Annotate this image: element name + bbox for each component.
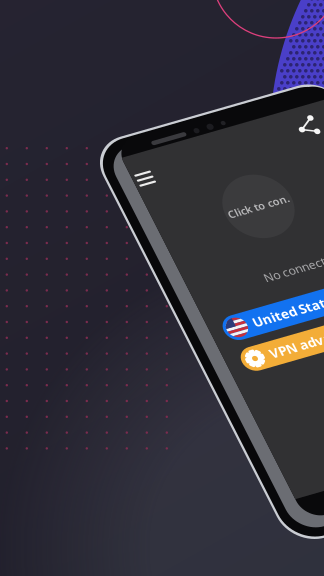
button[interactable]: Share: [281, 172, 315, 204]
button[interactable]: Menu: [108, 178, 142, 210]
button[interactable]: Click to con.: [181, 219, 249, 287]
staticText: United States • Free: [156, 357, 292, 374]
button[interactable]: VPN advanced: [128, 388, 306, 414]
staticText: VPN advanced: [157, 392, 252, 410]
staticText: No connected: [187, 317, 264, 333]
button[interactable]: United States • Free: [126, 352, 304, 379]
